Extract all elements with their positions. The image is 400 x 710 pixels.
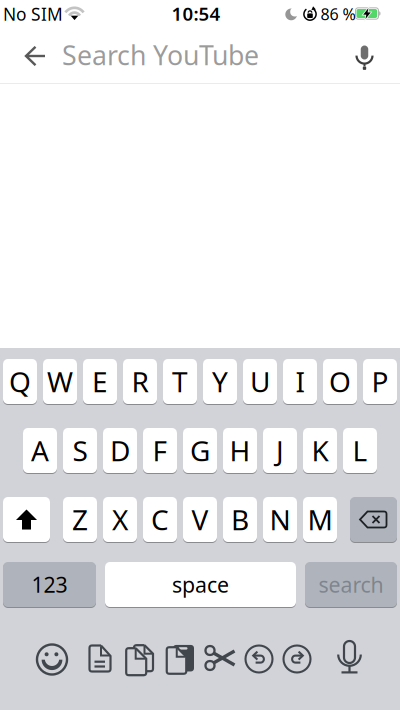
staticText: F	[152, 432, 167, 469]
button[interactable]: S	[63, 427, 97, 474]
button[interactable]: A	[23, 427, 57, 474]
button[interactable]: Delete	[350, 496, 397, 543]
staticText: D	[110, 432, 130, 469]
staticText: O	[329, 363, 351, 400]
staticText: L	[352, 432, 367, 469]
staticText: space	[172, 570, 229, 599]
staticText: X	[112, 501, 128, 538]
button[interactable]: P	[363, 358, 397, 405]
button[interactable]: Y	[203, 358, 237, 405]
staticText: S	[72, 432, 87, 469]
staticText: R	[131, 363, 148, 400]
button[interactable]: T	[163, 358, 197, 405]
button[interactable]: D	[103, 427, 137, 474]
button[interactable]: L	[343, 427, 377, 474]
staticText: C	[151, 501, 169, 538]
button[interactable]: E	[83, 358, 117, 405]
button[interactable]: M	[303, 496, 337, 543]
button[interactable]: Paste	[160, 636, 200, 680]
button[interactable]: U	[243, 358, 277, 405]
button[interactable]: search	[305, 561, 397, 608]
staticText: V	[191, 501, 208, 538]
button[interactable]: F	[143, 427, 177, 474]
staticText: Search YouTube	[62, 37, 259, 73]
staticText: Z	[72, 501, 88, 538]
button[interactable]: Emoji	[31, 637, 73, 681]
staticText: A	[31, 432, 49, 469]
button[interactable]: J	[263, 427, 297, 474]
staticText: Y	[212, 363, 228, 400]
button[interactable]: Q	[3, 358, 37, 405]
button[interactable]: R	[123, 358, 157, 405]
staticText: P	[371, 363, 388, 400]
button[interactable]: Dictation	[329, 635, 369, 679]
button[interactable]: I	[283, 358, 317, 405]
button[interactable]: Cut	[199, 636, 241, 680]
staticText: B	[231, 501, 249, 538]
staticText: W	[47, 363, 73, 400]
staticText: H	[229, 432, 250, 469]
button[interactable]: Copy	[119, 636, 159, 680]
staticText: U	[250, 363, 270, 400]
staticText: M	[307, 501, 332, 538]
staticText: K	[311, 432, 328, 469]
staticText: 86 %	[320, 3, 355, 25]
button[interactable]: B	[223, 496, 257, 543]
button[interactable]: Z	[63, 496, 97, 543]
button[interactable]: Search YouTube	[62, 30, 337, 80]
staticText: No SIM	[3, 2, 63, 25]
staticText: J	[276, 432, 284, 469]
button[interactable]: Undo	[239, 637, 279, 681]
staticText: E	[92, 363, 108, 400]
staticText: T	[172, 363, 188, 400]
button[interactable]: space	[105, 561, 296, 608]
button[interactable]: O	[323, 358, 357, 405]
button[interactable]: W	[43, 358, 77, 405]
button[interactable]: H	[223, 427, 257, 474]
staticText: 123	[31, 570, 67, 599]
button[interactable]: K	[303, 427, 337, 474]
button[interactable]: Voice search	[342, 34, 386, 78]
staticText: N	[269, 501, 290, 538]
button[interactable]: Shift	[3, 496, 50, 543]
staticText: 10:54	[171, 1, 220, 26]
button[interactable]: V	[183, 496, 217, 543]
staticText: search	[318, 570, 383, 599]
staticText: I	[295, 363, 304, 400]
staticText: Q	[9, 363, 31, 400]
button[interactable]: G	[183, 427, 217, 474]
button[interactable]: 123	[3, 561, 96, 608]
button[interactable]: X	[103, 496, 137, 543]
button[interactable]: C	[143, 496, 177, 543]
staticText: G	[190, 432, 210, 469]
button[interactable]: Back	[13, 34, 57, 78]
button[interactable]: New document	[79, 636, 119, 680]
button[interactable]: N	[263, 496, 297, 543]
button[interactable]: Redo	[277, 637, 317, 681]
